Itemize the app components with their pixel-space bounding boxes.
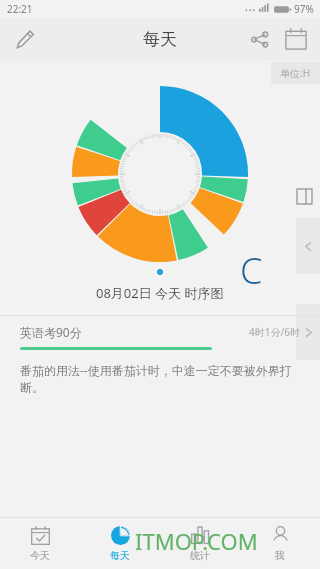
button[interactable]: 单位:H (280, 66, 311, 80)
button[interactable]: Next (296, 304, 320, 360)
staticText: 08月02日 今天 时序图 (96, 284, 224, 302)
staticText: 4时1分/6时 (249, 325, 300, 339)
staticText: 每天 (110, 549, 130, 562)
staticText: 22:21 (7, 2, 33, 16)
staticText: 97% (294, 2, 314, 16)
staticText: 我 (275, 549, 285, 562)
staticText: 番茄的用法--使用番茄计时，中途一定不要被外界打断。 (20, 362, 298, 396)
staticText: 今天 (30, 549, 50, 562)
staticText: 统计 (190, 549, 210, 562)
button[interactable]: 我 (240, 517, 320, 569)
button[interactable]: Calendar (279, 22, 313, 56)
button[interactable]: Edit (4, 19, 44, 59)
button[interactable]: 每天 (80, 517, 160, 569)
staticText: 英语考90分 (20, 324, 82, 340)
staticText: 每天 (143, 29, 177, 50)
staticText: C (240, 246, 263, 295)
staticText: ITMOP.COM (135, 526, 258, 556)
button[interactable]: 英语考90分 (0, 308, 320, 396)
button[interactable]: Layout (292, 184, 316, 208)
button[interactable]: Previous (296, 218, 320, 274)
button[interactable]: 今天 (0, 517, 80, 569)
button[interactable]: Share (239, 19, 279, 59)
staticText: 单位:H (280, 66, 311, 80)
button[interactable]: 统计 (160, 517, 240, 569)
